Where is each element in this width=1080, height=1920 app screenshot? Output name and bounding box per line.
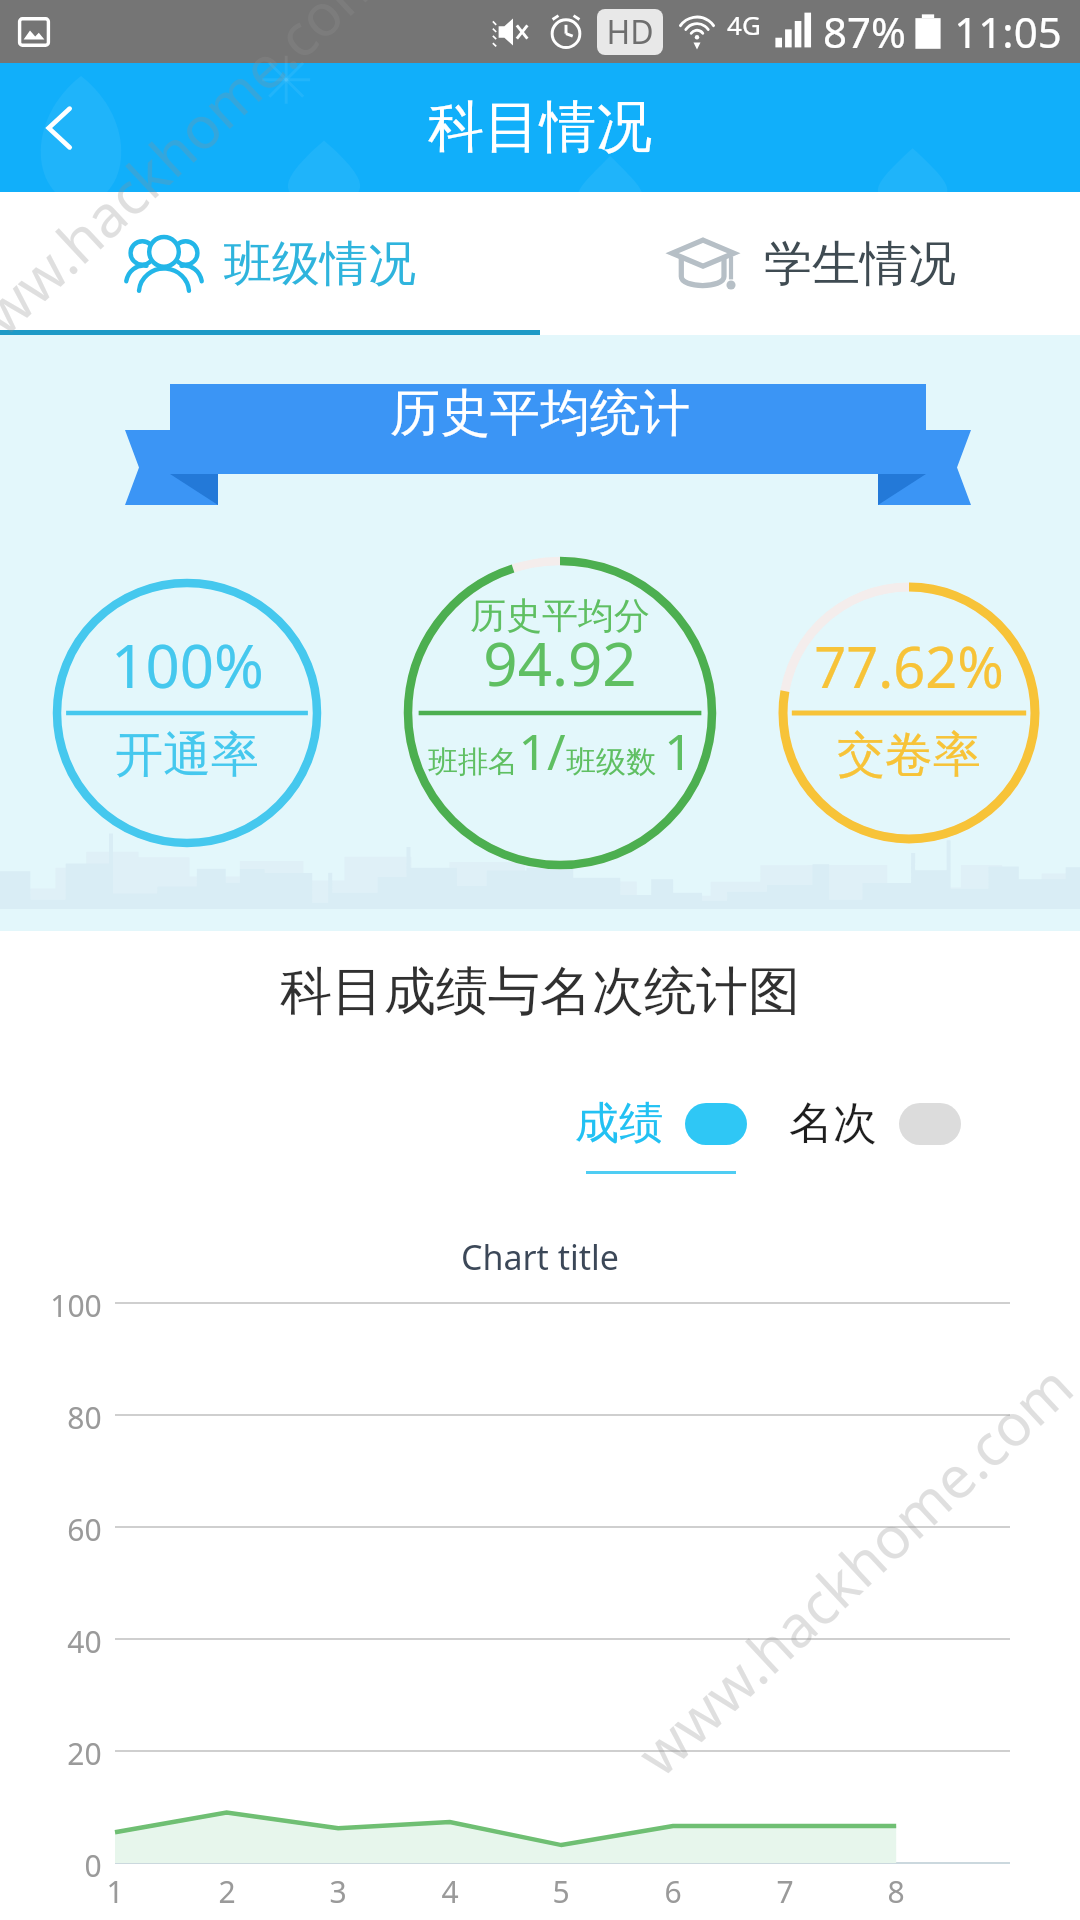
- staticText: www.hackhome.com: [0, 0, 399, 382]
- staticText: 历史平均统计: [390, 382, 690, 445]
- staticText: 科目成绩与名次统计图: [280, 959, 800, 1025]
- staticText: 6: [664, 1871, 682, 1912]
- staticText: 1/: [518, 717, 566, 785]
- staticText: 2: [218, 1871, 236, 1912]
- staticText: 班级情况: [224, 234, 416, 294]
- staticText: 班级数: [566, 743, 656, 781]
- staticText: 1: [106, 1871, 124, 1912]
- staticText: 100: [50, 1285, 102, 1326]
- staticText: 成绩: [575, 1096, 663, 1151]
- staticText: 3: [329, 1871, 347, 1912]
- staticText: 94.92: [483, 622, 637, 704]
- staticText: 7: [776, 1871, 794, 1912]
- staticText: HD: [606, 10, 654, 54]
- staticText: www.hackhome.com: [619, 1347, 1080, 1792]
- staticText: 1: [664, 717, 693, 785]
- staticText: 87%: [823, 3, 906, 60]
- staticText: 11:05: [954, 3, 1062, 60]
- button[interactable]: 班级情况: [0, 192, 540, 335]
- button[interactable]: Back: [0, 63, 120, 192]
- staticText: Chart title: [461, 1234, 619, 1280]
- staticText: 开通率: [115, 725, 259, 785]
- staticText: 5: [552, 1871, 570, 1912]
- staticText: 4G: [727, 7, 761, 42]
- button[interactable]: 成绩: [575, 1096, 747, 1174]
- staticText: 科目情况: [428, 92, 652, 163]
- staticText: 77.62%: [814, 628, 1004, 704]
- button[interactable]: 学生情况: [540, 192, 1080, 335]
- staticText: 学生情况: [764, 234, 956, 294]
- staticText: 交卷率: [837, 725, 981, 785]
- staticText: 100%: [111, 624, 264, 706]
- staticText: 40: [67, 1621, 102, 1662]
- staticText: 0: [84, 1845, 102, 1886]
- staticText: 8: [887, 1871, 905, 1912]
- staticText: 班排名: [428, 743, 518, 781]
- staticText: 名次: [789, 1096, 877, 1151]
- staticText: 20: [67, 1733, 102, 1774]
- staticText: 80: [67, 1397, 102, 1438]
- staticText: 历史平均分: [470, 593, 650, 638]
- staticText: 60: [67, 1509, 102, 1550]
- staticText: 4: [441, 1871, 459, 1912]
- button[interactable]: 名次: [789, 1096, 961, 1151]
